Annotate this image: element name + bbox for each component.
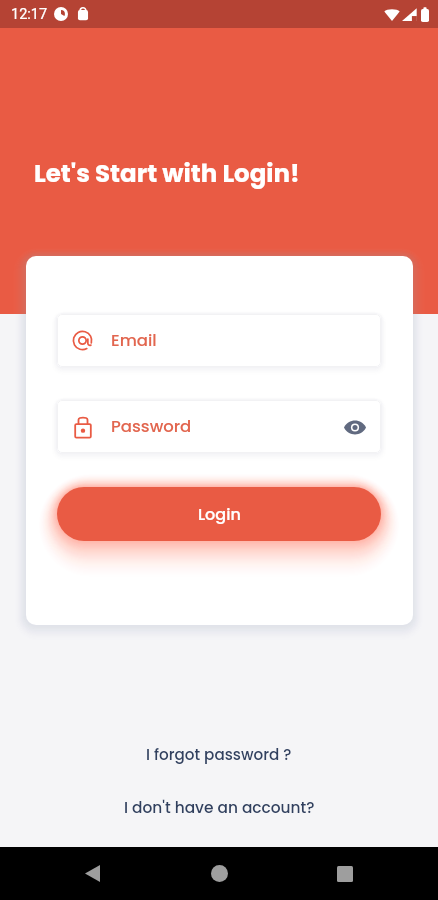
staticText: I forgot password ?: [146, 744, 292, 765]
button[interactable]: Home: [175, 847, 263, 900]
staticText: Let's Start with Login!: [34, 156, 300, 190]
button[interactable]: I forgot password ?: [0, 739, 438, 769]
button[interactable]: I don't have an account?: [0, 793, 438, 823]
button[interactable]: Password: [57, 400, 381, 453]
button[interactable]: Back: [48, 847, 136, 900]
button[interactable]: Recent apps: [301, 847, 389, 900]
button[interactable]: Show password: [340, 412, 370, 442]
button[interactable]: Login: [57, 487, 381, 541]
staticText: Password: [111, 415, 192, 438]
staticText: 12:17: [11, 6, 48, 23]
staticText: Email: [111, 329, 157, 352]
staticText: Login: [198, 503, 241, 525]
staticText: I don't have an account?: [124, 797, 315, 819]
button[interactable]: Email: [57, 314, 381, 367]
